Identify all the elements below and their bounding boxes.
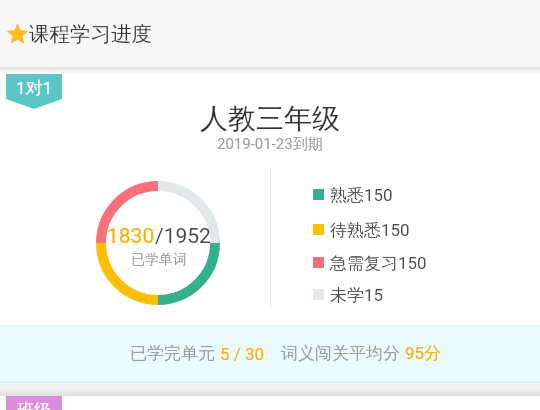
button[interactable]: 熟悉150 (313, 185, 393, 203)
staticText: 词义闯关平均分 (281, 343, 405, 364)
staticText: /1952 (155, 224, 211, 249)
button[interactable]: 急需复习150 (313, 253, 427, 271)
staticText: 已学完单元 (130, 343, 220, 364)
button[interactable]: 班级 (6, 396, 62, 410)
staticText: 急需复习150 (330, 253, 427, 271)
button[interactable]: 课程学习进度 (6, 0, 540, 67)
button[interactable]: 1对1 (6, 74, 62, 109)
staticText: 1830 (107, 224, 155, 249)
button[interactable]: 待熟悉150 (313, 220, 410, 238)
staticText: 95分 (405, 343, 442, 364)
staticText: 5 / 30 (220, 344, 265, 364)
staticText: 人教三年级 (200, 101, 340, 136)
button[interactable]: 未学15 (313, 285, 384, 303)
staticText: 待熟悉150 (330, 220, 410, 238)
staticText: 班级 (17, 400, 51, 410)
staticText: 2019-01-23到期 (217, 135, 323, 154)
button[interactable]: 已学完单元 (0, 325, 540, 381)
staticText: 已学单词 (131, 251, 187, 266)
staticText: 课程学习进度 (29, 21, 152, 47)
staticText: 未学15 (330, 285, 384, 303)
staticText: 1对1 (16, 78, 53, 99)
staticText: 熟悉150 (330, 185, 393, 203)
